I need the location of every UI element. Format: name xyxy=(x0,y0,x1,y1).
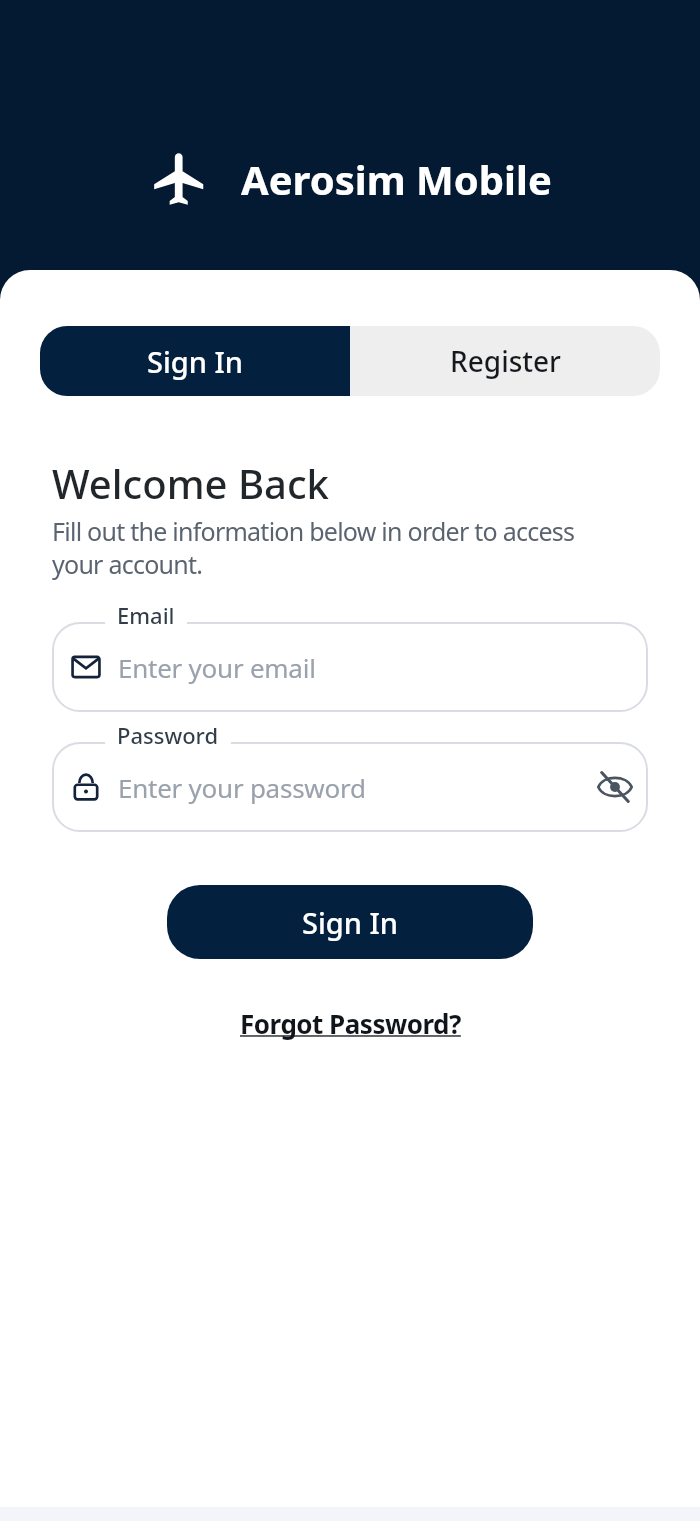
staticText: Sign In xyxy=(302,903,398,942)
staticText: Forgot Password? xyxy=(240,1006,461,1041)
staticText: Register xyxy=(450,342,561,380)
staticText: Welcome Back xyxy=(52,456,329,510)
staticText: Enter your email xyxy=(118,650,648,685)
button[interactable]: Forgot Password? xyxy=(240,1006,461,1041)
staticText: Fill out the information below in order … xyxy=(52,514,575,581)
button[interactable]: Sign In xyxy=(40,326,350,396)
staticText: Aerosim Mobile xyxy=(241,152,552,206)
button[interactable]: Enter your password xyxy=(52,720,648,832)
button[interactable]: Sign In xyxy=(167,885,533,959)
staticText: Sign In xyxy=(147,342,243,381)
button[interactable]: Register xyxy=(350,326,660,396)
staticText: Email xyxy=(117,600,175,630)
button[interactable]: Enter your email xyxy=(52,600,648,712)
staticText: Password xyxy=(117,720,219,750)
staticText: Enter your password xyxy=(118,770,596,805)
